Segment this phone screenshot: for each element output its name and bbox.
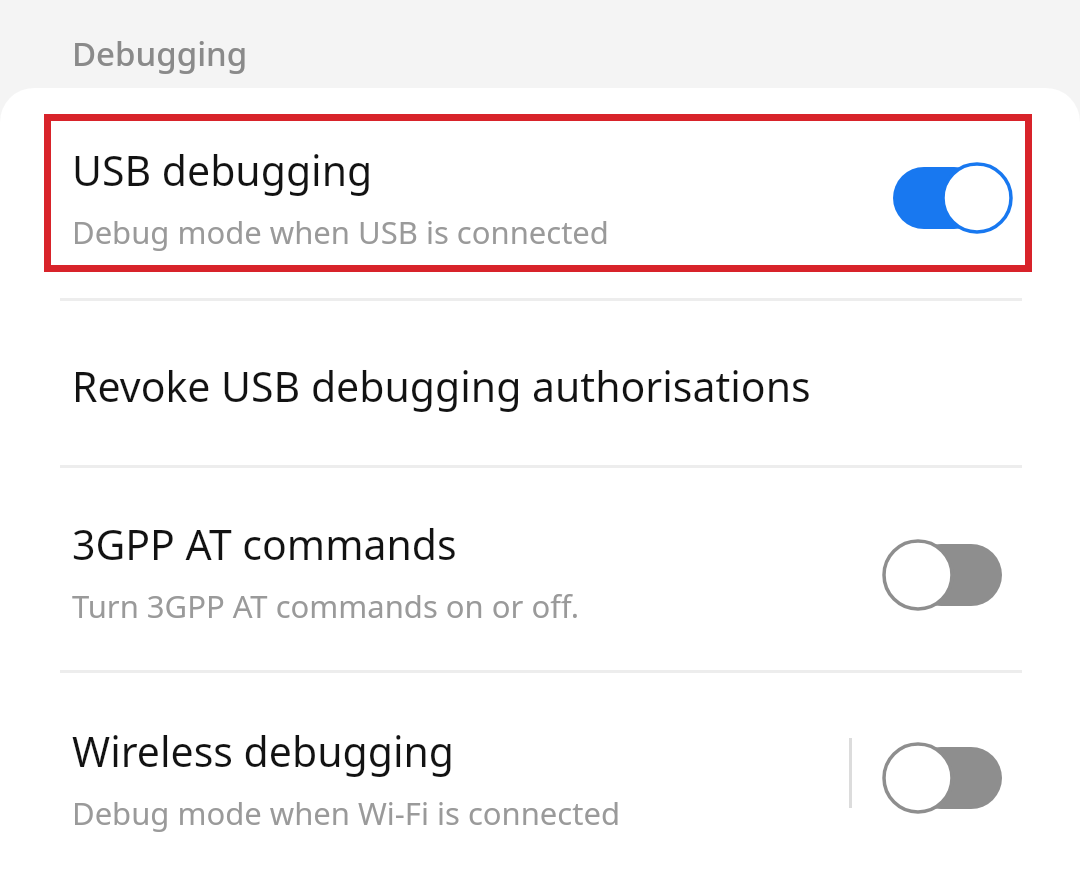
button[interactable]: Toggle on xyxy=(886,159,1018,237)
button[interactable]: Toggle off xyxy=(886,739,1018,817)
button[interactable]: Revoke USB debugging authorisations xyxy=(0,301,1080,465)
staticText: Revoke USB debugging authorisations xyxy=(72,358,811,414)
staticText: Turn 3GPP AT commands on or off. xyxy=(72,585,580,627)
button[interactable]: Wireless debugging xyxy=(0,673,1080,874)
staticText: USB debugging xyxy=(72,142,373,198)
staticText: Wireless debugging xyxy=(72,723,455,779)
button[interactable]: USB debugging xyxy=(0,118,1080,270)
button[interactable]: Toggle off xyxy=(886,536,1018,614)
staticText: Debug mode when Wi-Fi is connected xyxy=(72,792,620,834)
staticText: 3GPP AT commands xyxy=(72,516,457,572)
staticText: Debugging xyxy=(72,31,248,76)
staticText: Debug mode when USB is connected xyxy=(72,211,609,253)
button[interactable]: 3GPP AT commands xyxy=(0,468,1080,670)
